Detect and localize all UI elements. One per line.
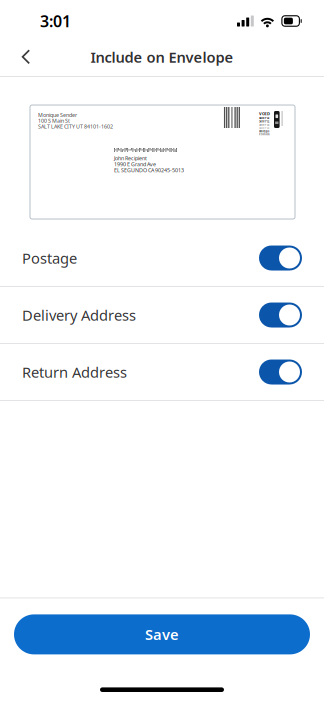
- button[interactable]: Postage: [0, 230, 324, 287]
- staticText: 1990 E Grand Ave: [114, 161, 156, 168]
- button[interactable]: Save: [14, 614, 310, 654]
- staticText: endicia: [259, 132, 270, 136]
- button[interactable]: Back: [0, 38, 52, 76]
- staticText: SAMPLE: [259, 123, 269, 126]
- staticText: Postage: [22, 248, 77, 268]
- staticText: 3:01: [40, 10, 71, 32]
- button[interactable]: Return Address: [0, 344, 324, 401]
- button[interactable]: Delivery Address: [0, 287, 324, 344]
- staticText: Monique Sender: [38, 111, 77, 118]
- staticText: 100 S Main St: [38, 117, 70, 124]
- staticText: John Recipient: [114, 155, 147, 162]
- staticText: Delivery Address: [22, 305, 136, 325]
- staticText: VOID: [259, 111, 270, 116]
- staticText: SALT LAKE CITY UT 84101-1602: [38, 123, 113, 130]
- staticText: SAMPLE: [259, 120, 269, 123]
- staticText: EL SEGUNDO CA 90245-5013: [114, 167, 184, 174]
- staticText: SAMPLE: [259, 126, 269, 130]
- staticText: SAMPLE: [259, 116, 269, 120]
- staticText: Include on Envelope: [90, 47, 233, 67]
- staticText: stamps: [259, 129, 269, 133]
- staticText: Save: [145, 625, 179, 644]
- staticText: Return Address: [22, 362, 127, 382]
